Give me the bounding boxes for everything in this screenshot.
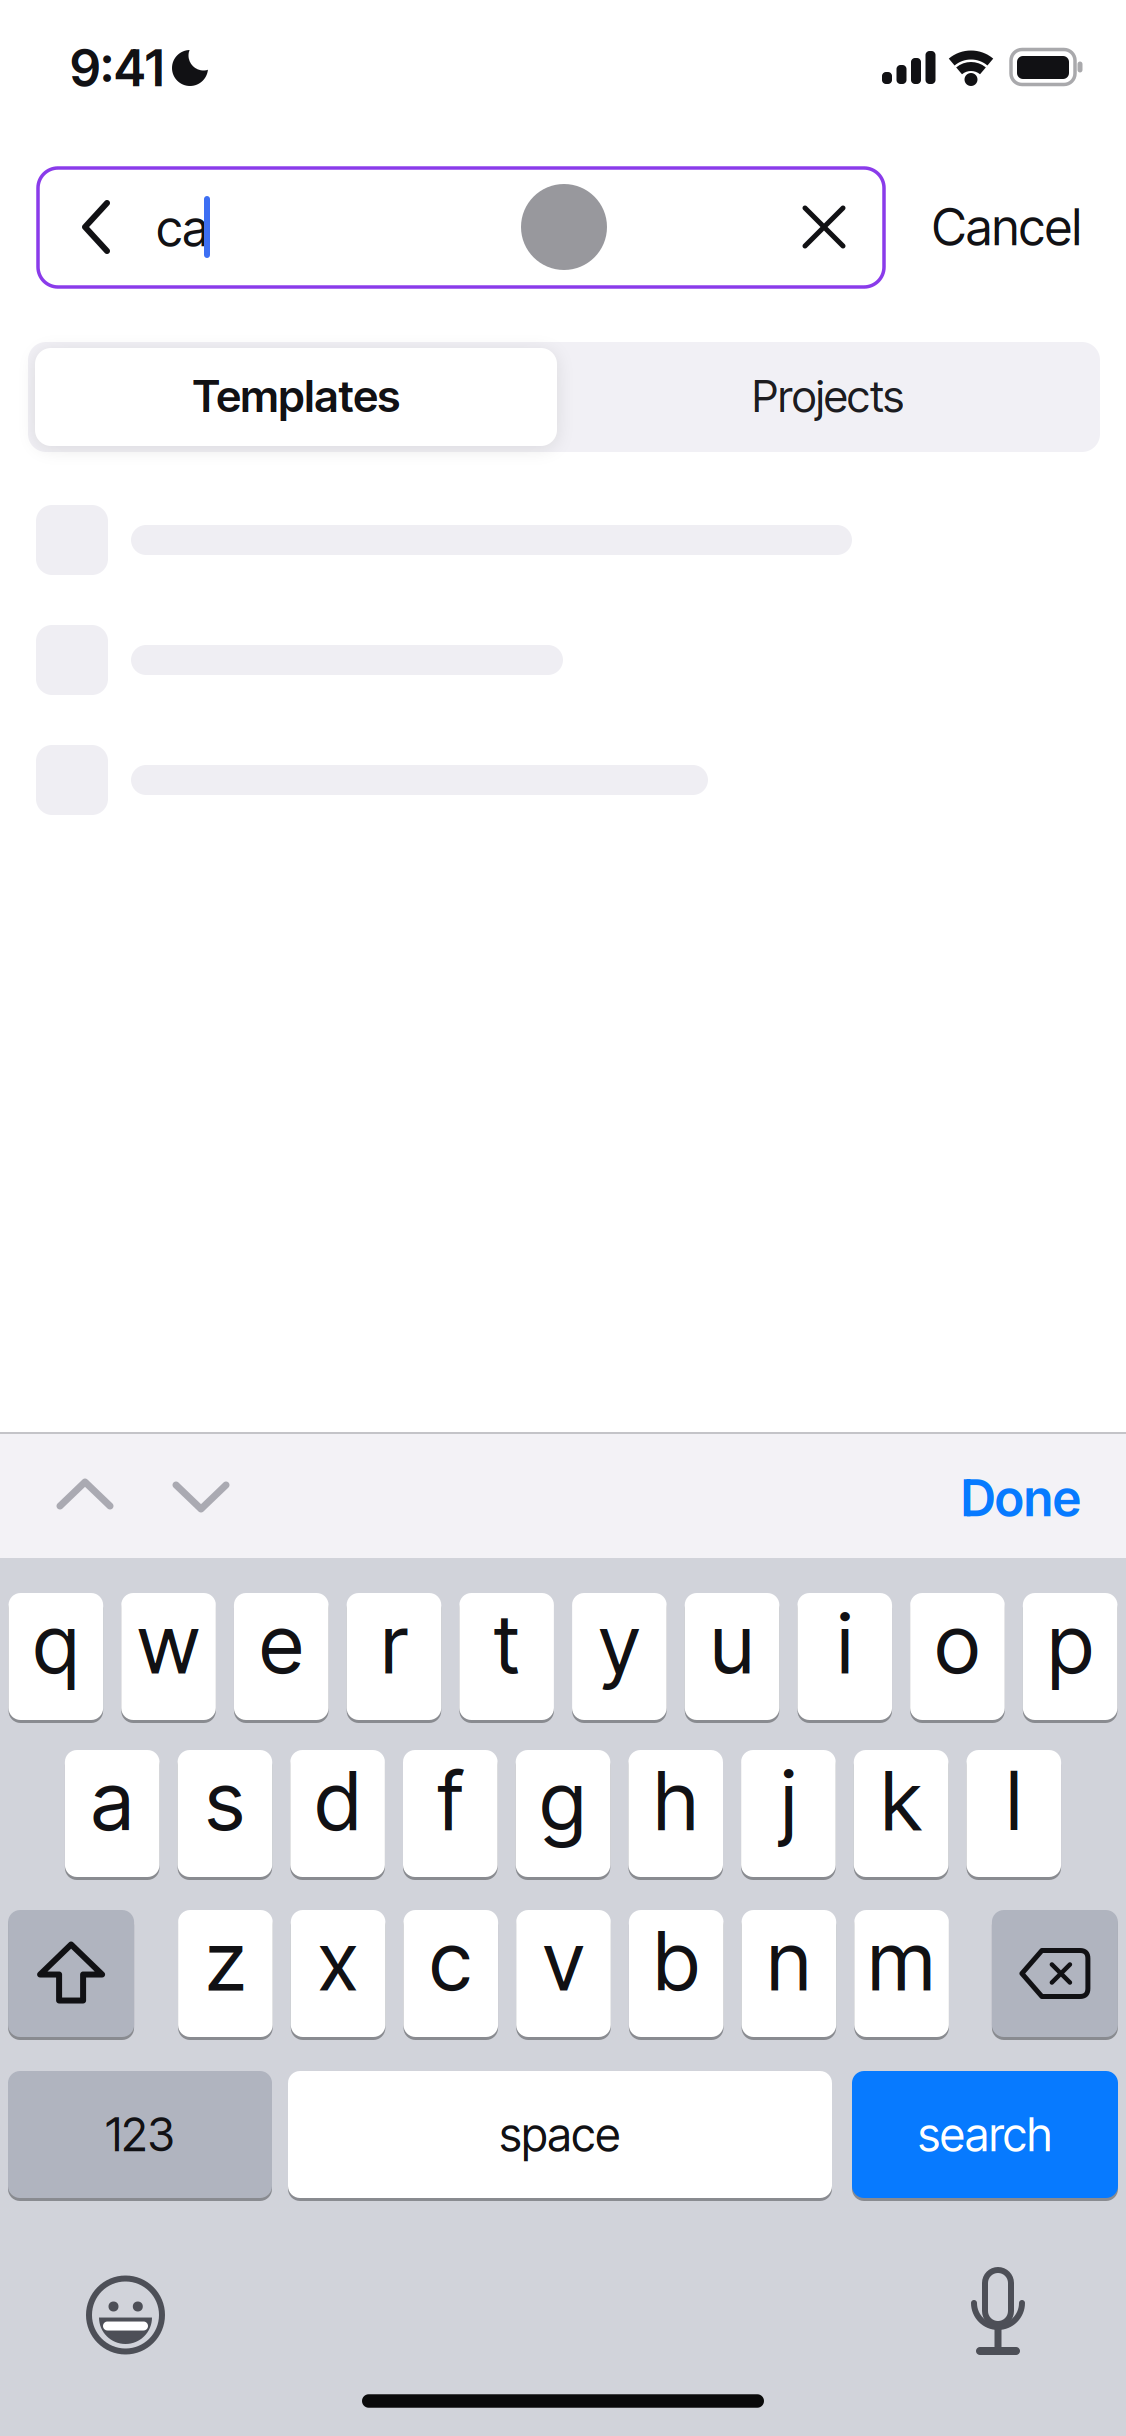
staticText: k <box>881 1751 921 1849</box>
staticText: b <box>654 1911 699 2009</box>
staticText: m <box>868 1911 935 2009</box>
staticText: s <box>205 1751 244 1849</box>
staticText: n <box>767 1911 811 2009</box>
staticText: Templates <box>192 369 399 423</box>
staticText: Done <box>961 1468 1081 1528</box>
staticText: 123 <box>105 2107 174 2162</box>
staticText: y <box>599 1594 640 1692</box>
staticText: ca <box>156 198 208 258</box>
staticText: Cancel <box>932 197 1082 257</box>
staticText: e <box>260 1594 303 1692</box>
staticText: t <box>494 1594 520 1692</box>
staticText: space <box>499 2107 620 2162</box>
staticText: x <box>318 1911 358 2009</box>
staticText: d <box>315 1751 360 1849</box>
staticText: l <box>1006 1751 1021 1849</box>
staticText: i <box>837 1594 852 1692</box>
staticText: v <box>543 1911 584 2009</box>
staticText: g <box>540 1751 586 1849</box>
staticText: p <box>1048 1594 1093 1692</box>
staticText: w <box>137 1594 199 1692</box>
staticText: 9:41 <box>70 38 164 98</box>
staticText: f <box>438 1751 463 1849</box>
staticText: h <box>654 1751 698 1849</box>
staticText: Projects <box>752 369 904 423</box>
staticText: q <box>33 1594 78 1692</box>
staticText: search <box>918 2107 1052 2162</box>
staticText: o <box>935 1594 980 1692</box>
staticText: j <box>781 1751 796 1849</box>
staticText: z <box>205 1911 245 2009</box>
staticText: c <box>430 1911 472 2009</box>
staticText: r <box>381 1594 407 1692</box>
staticText: u <box>710 1594 753 1692</box>
staticText: a <box>91 1751 133 1849</box>
